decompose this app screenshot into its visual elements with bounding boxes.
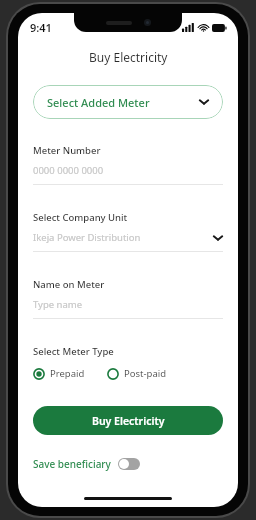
- staticText: 0000 0000 0000: [33, 164, 104, 177]
- staticText: Type name: [33, 298, 83, 311]
- button[interactable]: Prepaid: [33, 367, 85, 380]
- other: Save beneficiary toggle: [118, 458, 140, 470]
- button[interactable]: Select Company Unit: [33, 211, 223, 252]
- button[interactable]: Post-paid: [107, 367, 166, 380]
- staticText: Select Meter Type: [33, 345, 114, 358]
- staticText: Buy Electricity: [89, 49, 168, 65]
- staticText: Prepaid: [50, 367, 85, 380]
- button[interactable]: Name on Meter: [33, 278, 223, 319]
- button[interactable]: Select Added Meter: [33, 85, 223, 119]
- staticText: 9:41: [30, 20, 52, 35]
- staticText: Save beneficiary: [33, 457, 111, 471]
- staticText: Ikeja Power Distribution: [33, 231, 141, 244]
- button[interactable]: Buy Electricity: [33, 406, 223, 435]
- button[interactable]: Meter Number: [33, 144, 223, 185]
- staticText: Meter Number: [33, 144, 101, 157]
- staticText: Select Added Meter: [47, 95, 150, 110]
- button[interactable]: Save beneficiary: [33, 457, 140, 471]
- staticText: Buy Electricity: [92, 414, 165, 428]
- staticText: Name on Meter: [33, 278, 105, 291]
- staticText: Select Company Unit: [33, 211, 128, 224]
- staticText: Post-paid: [124, 367, 166, 380]
